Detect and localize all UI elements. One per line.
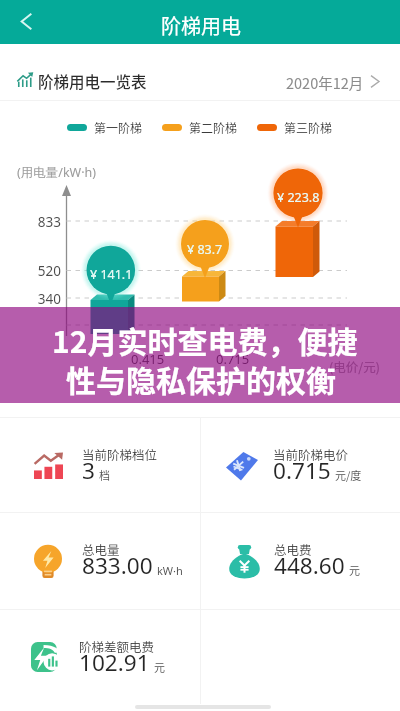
staticText: 第二阶梯: [189, 119, 238, 136]
staticText: kW·h: [157, 563, 183, 578]
button[interactable]: 总电费: [200, 513, 400, 609]
staticText: 340: [22, 290, 61, 308]
staticText: 阶梯用电一览表: [38, 70, 147, 92]
staticText: 元: [154, 659, 165, 675]
staticText: 第一阶梯: [94, 119, 143, 136]
staticText: 0.715: [273, 455, 331, 486]
staticText: 448.60: [274, 550, 345, 581]
staticText: 总电量: [82, 540, 120, 558]
staticText: 阶梯用电: [161, 11, 241, 40]
staticText: ¥ 223.8: [277, 189, 320, 206]
staticText: 833.00: [82, 550, 153, 581]
staticText: 当前阶梯电价: [273, 445, 349, 463]
staticText: (用电量/kW·h): [17, 164, 97, 181]
staticText: 2020年12月: [286, 72, 364, 93]
staticText: 性与隐私保护的权衡: [66, 357, 336, 400]
button[interactable]: 当前阶梯电价: [200, 418, 400, 513]
staticText: 元/度: [335, 467, 362, 483]
staticText: 0.415: [131, 350, 165, 368]
staticText: 档: [99, 467, 110, 483]
staticText: ¥ 83.7: [187, 241, 223, 258]
staticText: 0.715: [216, 350, 250, 368]
staticText: 520: [22, 262, 61, 280]
staticText: 833: [22, 213, 61, 231]
staticText: 3: [82, 455, 95, 486]
button[interactable]: 阶梯差额电费: [0, 610, 200, 704]
staticText: 第三阶梯: [284, 119, 333, 136]
button[interactable]: 总电量: [0, 513, 200, 609]
staticText: 阶梯差额电费: [79, 637, 155, 655]
staticText: ¥ 141.1: [90, 266, 133, 283]
staticText: 元: [349, 562, 360, 578]
button[interactable]: 阶梯用电一览表: [0, 44, 400, 100]
staticText: 102.91: [79, 647, 150, 678]
staticText: (电价/元): [329, 357, 380, 375]
staticText: 总电费: [274, 540, 312, 558]
button[interactable]: Back: [0, 0, 48, 44]
staticText: 当前阶梯档位: [82, 445, 158, 463]
staticText: 12月实时查电费，便捷: [52, 318, 358, 361]
button[interactable]: 当前阶梯档位: [0, 418, 200, 513]
